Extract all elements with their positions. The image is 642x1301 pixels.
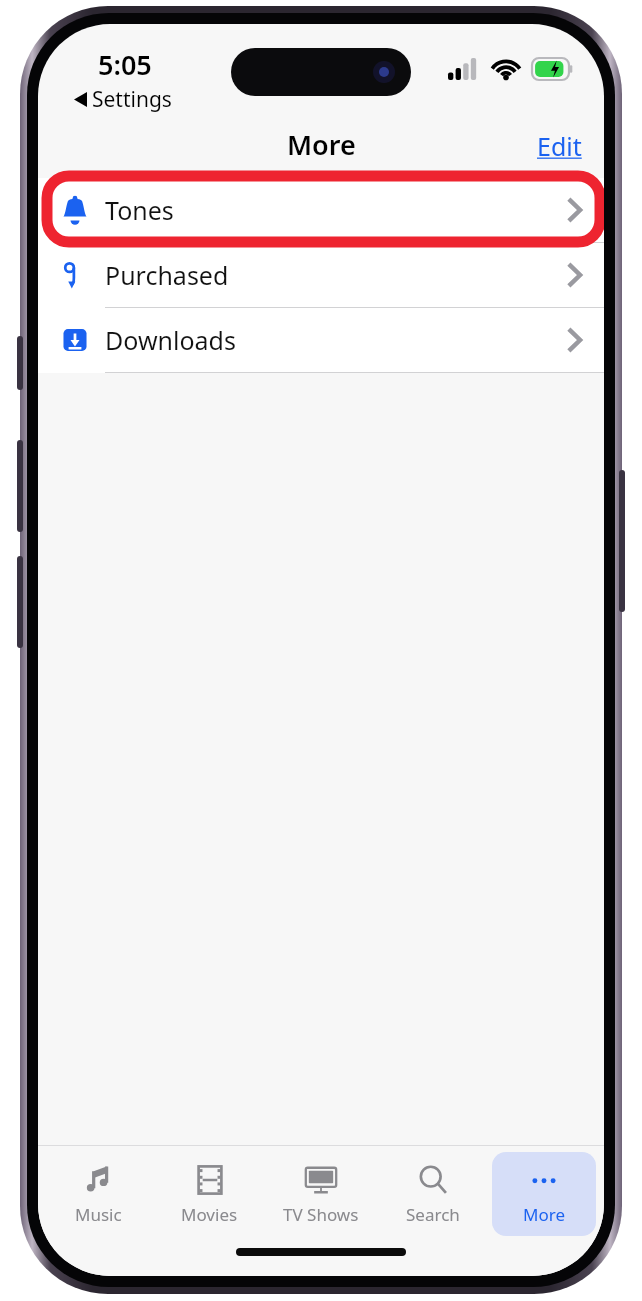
staticText: 5:05 xyxy=(98,46,152,83)
button[interactable]: TV Shows xyxy=(269,1152,373,1236)
staticText: Tones xyxy=(105,193,174,227)
staticText: Edit xyxy=(537,129,582,163)
staticText: TV Shows xyxy=(283,1203,359,1226)
button[interactable]: Downloads xyxy=(38,308,604,372)
staticText: More xyxy=(287,126,356,163)
button[interactable]: Purchased xyxy=(38,243,604,307)
button[interactable]: Edit xyxy=(515,123,604,169)
staticText: Downloads xyxy=(105,323,236,357)
staticText: Purchased xyxy=(105,258,229,292)
button[interactable]: More xyxy=(492,1152,596,1236)
button[interactable]: Tones xyxy=(38,178,604,242)
button[interactable]: Search xyxy=(381,1152,485,1236)
staticText: Search xyxy=(406,1203,460,1226)
button[interactable]: Music xyxy=(46,1152,150,1236)
staticText: Movies xyxy=(181,1203,238,1226)
staticText: Music xyxy=(75,1203,122,1226)
button[interactable]: Movies xyxy=(157,1152,261,1236)
staticText: Settings xyxy=(92,85,172,114)
staticText: More xyxy=(523,1203,565,1226)
